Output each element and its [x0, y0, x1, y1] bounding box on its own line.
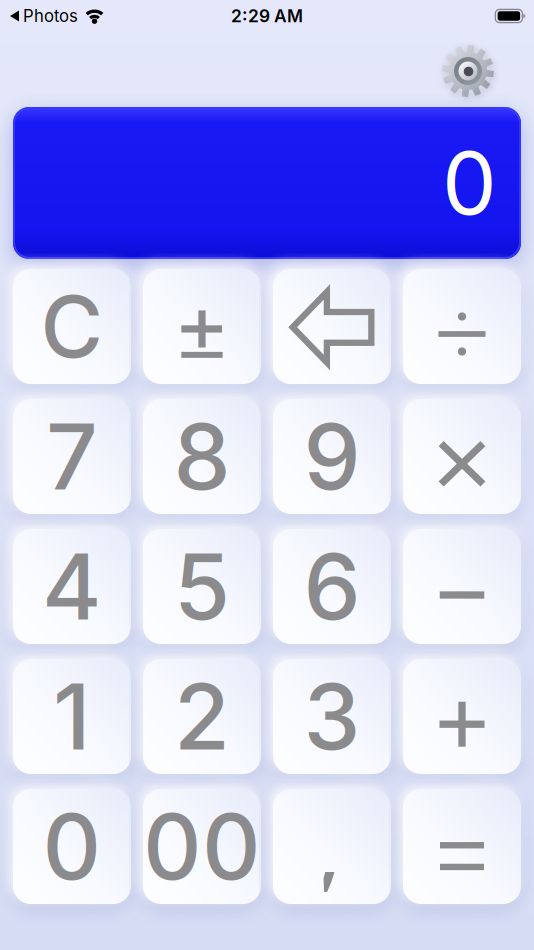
staticText: 6 [303, 532, 360, 641]
button[interactable]: Multiply [403, 399, 521, 514]
staticText: 2 [174, 662, 230, 771]
staticText: Photos [23, 6, 78, 26]
staticText: 8 [173, 402, 230, 511]
button[interactable]: 9 [273, 399, 391, 514]
staticText: 7 [46, 402, 98, 511]
button[interactable]: 4 [13, 529, 131, 644]
staticText: C [40, 275, 103, 378]
button[interactable]: 8 [143, 399, 261, 514]
staticText: 3 [303, 662, 360, 771]
button[interactable]: Add [403, 659, 521, 774]
staticText: 00 [143, 792, 261, 901]
staticText: 1 [53, 662, 91, 771]
staticText: 9 [303, 402, 360, 511]
button[interactable]: 00 [143, 789, 261, 904]
button[interactable]: 1 [13, 659, 131, 774]
button[interactable]: Subtract [403, 529, 521, 644]
button[interactable]: Backspace [273, 269, 391, 384]
button[interactable]: Settings [442, 45, 494, 97]
staticText: 0 [442, 131, 497, 235]
button[interactable]: 3 [273, 659, 391, 774]
button[interactable]: Equals [403, 789, 521, 904]
button[interactable]: Decimal comma [273, 789, 391, 904]
button[interactable]: 5 [143, 529, 261, 644]
button[interactable]: Divide [403, 269, 521, 384]
button[interactable]: C [13, 269, 131, 384]
staticText: 2:29 AM [231, 5, 303, 26]
button[interactable]: Back to Photos [10, 6, 78, 26]
button[interactable]: 2 [143, 659, 261, 774]
staticText: 5 [174, 532, 230, 641]
button[interactable]: 0 [13, 789, 131, 904]
button[interactable]: 7 [13, 399, 131, 514]
staticText: 4 [42, 532, 102, 641]
button[interactable]: 6 [273, 529, 391, 644]
staticText: 0 [42, 792, 101, 901]
button[interactable]: Plus minus [143, 269, 261, 384]
